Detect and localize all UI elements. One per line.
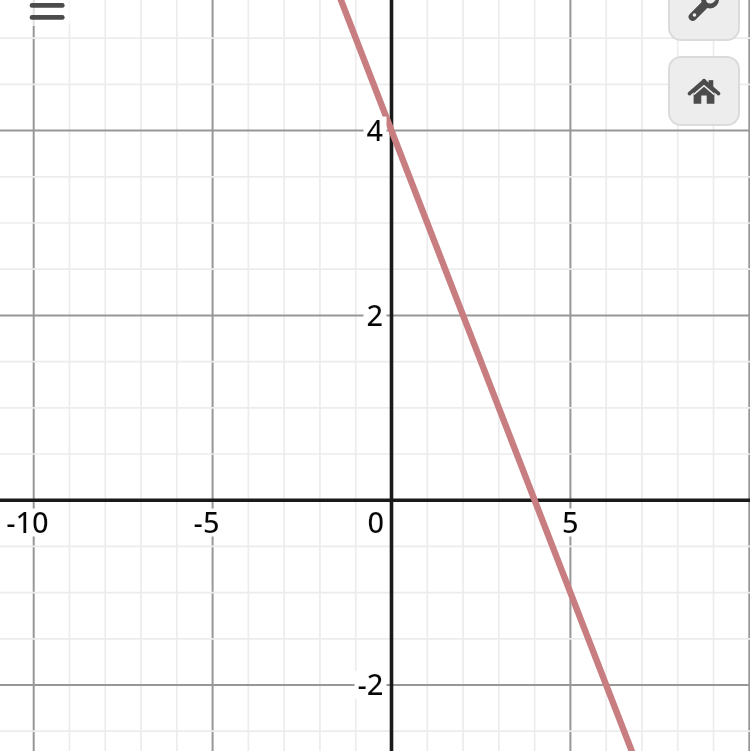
button[interactable]: Tools bbox=[668, 0, 740, 41]
button[interactable]: Menu bbox=[22, 0, 74, 26]
button[interactable]: Home bbox=[668, 56, 740, 126]
